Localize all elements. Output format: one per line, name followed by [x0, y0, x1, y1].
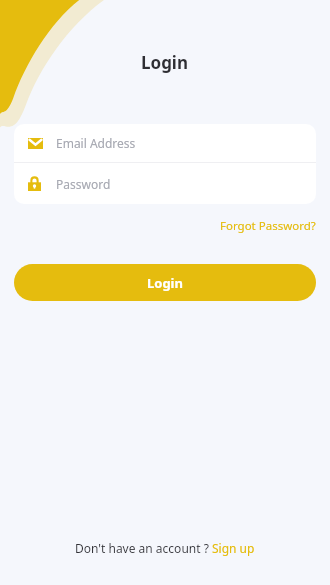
button[interactable]: Password [14, 163, 316, 204]
other: Email [28, 138, 43, 149]
staticText: Login [141, 51, 189, 74]
button[interactable]: Sign up [212, 540, 255, 556]
staticText: Email Address [56, 135, 136, 151]
staticText: Don't have an account ? [75, 540, 212, 556]
other: Password [28, 176, 41, 191]
staticText: Sign up [212, 540, 255, 556]
staticText: Forgot Password? [220, 218, 316, 234]
button[interactable]: Login [14, 264, 316, 301]
button[interactable]: Forgot Password? [218, 216, 318, 236]
staticText: Login [147, 274, 183, 292]
button[interactable]: Email [14, 124, 316, 162]
staticText: Password [56, 176, 111, 192]
